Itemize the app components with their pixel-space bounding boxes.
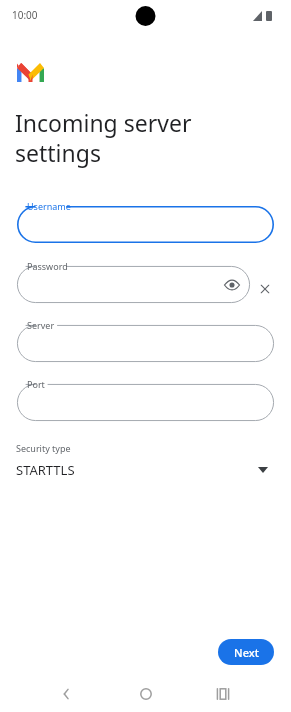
staticText: 10:00 [12,8,38,22]
button[interactable]: Clear password [256,280,274,298]
staticText: Next [234,645,259,660]
button[interactable]: Server [17,325,274,362]
button[interactable]: Recent apps [210,681,236,707]
staticText: Security type [16,442,71,454]
button[interactable]: Port [17,384,274,421]
button[interactable]: Security type [16,441,274,483]
button[interactable]: Password [17,266,250,303]
staticText: Username [27,200,71,212]
staticText: Server [27,319,55,331]
staticText: Port [27,378,45,390]
button[interactable]: Username [17,206,274,243]
staticText: Password [27,260,68,272]
button[interactable]: Back [53,681,79,707]
button[interactable]: Next [218,639,274,665]
staticText: Incoming server settings [15,107,192,169]
staticText: STARTTLS [16,461,75,479]
button[interactable]: Home [133,681,159,707]
button[interactable]: Show password [224,277,240,293]
